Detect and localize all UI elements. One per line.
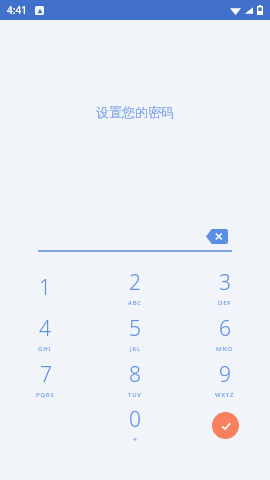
button[interactable]: 7 xyxy=(0,356,90,402)
staticText: 5 xyxy=(129,314,141,343)
button[interactable]: 3 xyxy=(180,264,270,310)
staticText: DEF xyxy=(218,299,232,307)
button[interactable]: 2 xyxy=(90,264,180,310)
staticText: 4:41 xyxy=(7,3,27,17)
button[interactable]: 1 xyxy=(0,264,90,310)
button[interactable]: Backspace xyxy=(202,225,232,247)
staticText: 8 xyxy=(129,360,141,389)
staticText: 7 xyxy=(40,360,52,389)
button[interactable]: 5 xyxy=(90,310,180,356)
button[interactable]: 6 xyxy=(180,310,270,356)
staticText: 9 xyxy=(219,360,231,389)
staticText: JKL xyxy=(130,345,141,353)
staticText: + xyxy=(133,435,138,445)
staticText: ABC xyxy=(128,299,142,307)
staticText: 2 xyxy=(129,268,141,297)
button[interactable]: 0 xyxy=(90,402,180,448)
button[interactable]: 8 xyxy=(90,356,180,402)
staticText: 4 xyxy=(39,314,51,343)
staticText: GHI xyxy=(38,345,52,353)
staticText: MNO xyxy=(216,345,234,353)
staticText: 1 xyxy=(39,273,51,302)
staticText: 6 xyxy=(219,314,231,343)
staticText: TUV xyxy=(128,391,142,399)
button[interactable]: Confirm xyxy=(212,412,239,439)
button[interactable]: 9 xyxy=(180,356,270,402)
button[interactable]: 4 xyxy=(0,310,90,356)
staticText: 0 xyxy=(129,405,141,434)
staticText: 3 xyxy=(219,268,231,297)
staticText: 设置您的密码 xyxy=(96,104,174,120)
staticText: PQRS xyxy=(36,391,55,399)
staticText: WXYZ xyxy=(215,391,235,399)
